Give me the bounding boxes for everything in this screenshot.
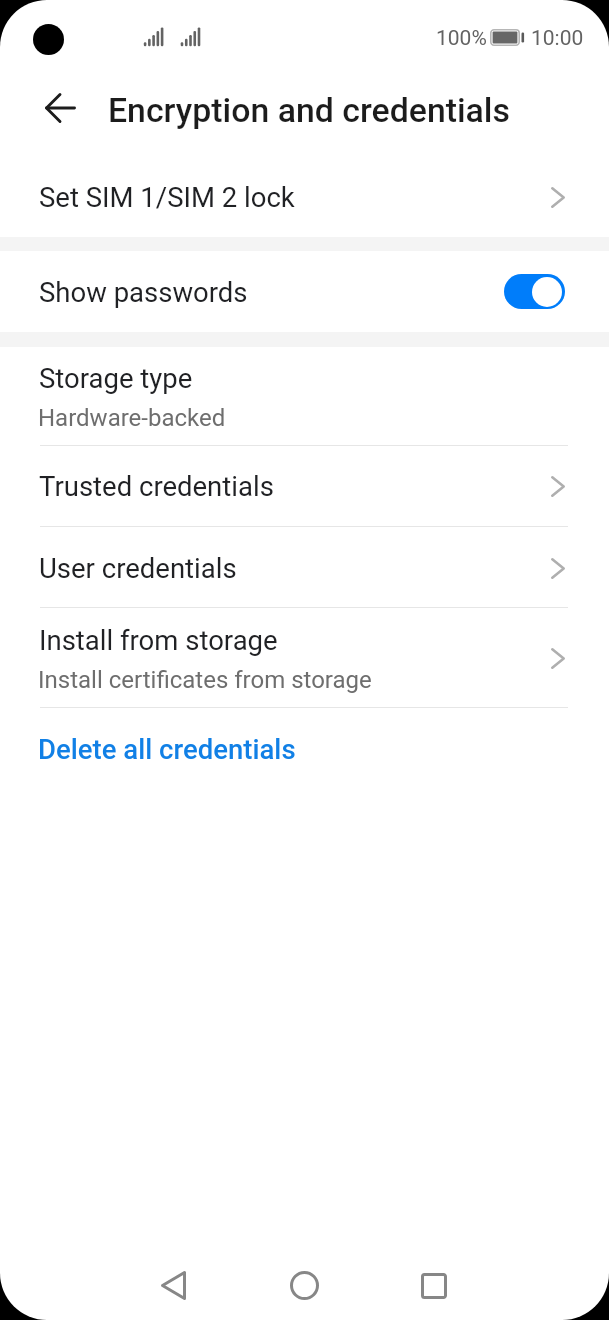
staticText: Set SIM 1/SIM 2 lock [39,181,295,213]
staticText: Show passwords [39,276,248,308]
staticText: 100% [436,26,487,51]
button[interactable]: Install from storage [0,608,609,708]
staticText: Install certificates from storage [38,666,372,694]
staticText: Trusted credentials [39,470,274,502]
staticText: Hardware-backed [38,404,226,432]
staticText: Delete all credentials [38,733,296,765]
button[interactable]: Set SIM 1/SIM 2 lock [0,160,609,237]
button[interactable]: Back [26,74,94,142]
button[interactable]: Home [273,1254,336,1317]
staticText: 10:00 [531,26,584,51]
button[interactable]: Trusted credentials [0,446,609,527]
button[interactable]: User credentials [0,527,609,608]
staticText: Storage type [39,362,193,394]
button[interactable]: Back [142,1254,205,1317]
button[interactable]: Recent apps [402,1254,465,1317]
staticText: Encryption and credentials [108,91,510,131]
button[interactable]: Show passwords [0,251,609,332]
staticText: Install from storage [39,624,278,656]
button[interactable]: Delete all credentials [0,708,609,776]
button[interactable]: Storage type [0,347,609,446]
staticText: User credentials [39,552,237,584]
